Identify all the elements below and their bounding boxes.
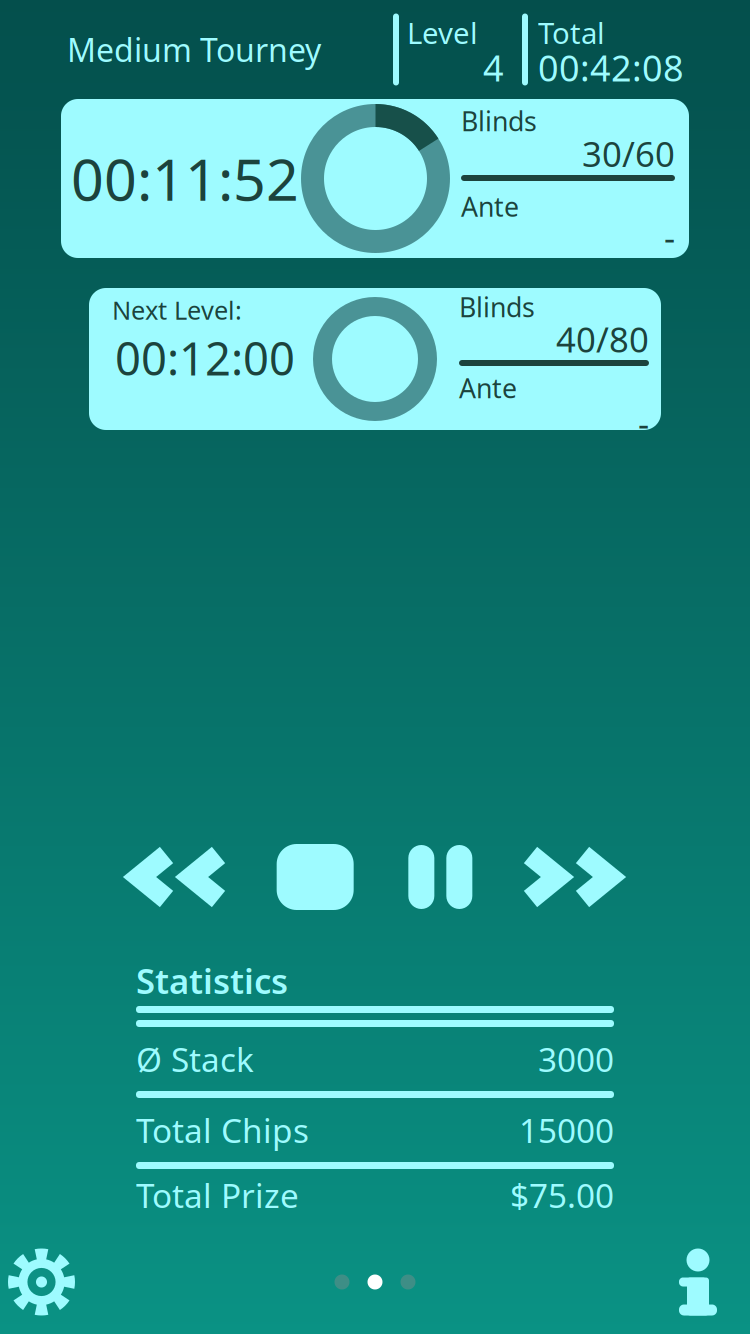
staticText: 40/80 [556,316,649,362]
staticText: Next Level: [112,293,242,327]
staticText: Level [407,13,478,52]
staticText: 15000 [519,1108,614,1152]
staticText: 00:42:08 [538,44,684,91]
staticText: Ante [461,189,519,224]
staticText: Ø Stack [136,1037,254,1081]
staticText: - [638,400,649,446]
staticText: Statistics [136,957,288,1003]
staticText: 3000 [538,1037,614,1081]
staticText: Blinds [461,103,537,139]
staticText: Total Prize [136,1173,299,1217]
staticText: 4 [483,44,504,91]
staticText: Ante [459,370,517,406]
staticText: - [664,214,675,260]
staticText: $75.00 [510,1173,614,1217]
staticText: Total [538,13,605,52]
staticText: 00:12:00 [115,328,295,388]
staticText: 30/60 [582,130,675,176]
staticText: Medium Tourney [67,28,321,71]
staticText: 00:11:52 [71,140,299,216]
staticText: Total Chips [136,1108,309,1152]
staticText: Blinds [459,289,535,325]
